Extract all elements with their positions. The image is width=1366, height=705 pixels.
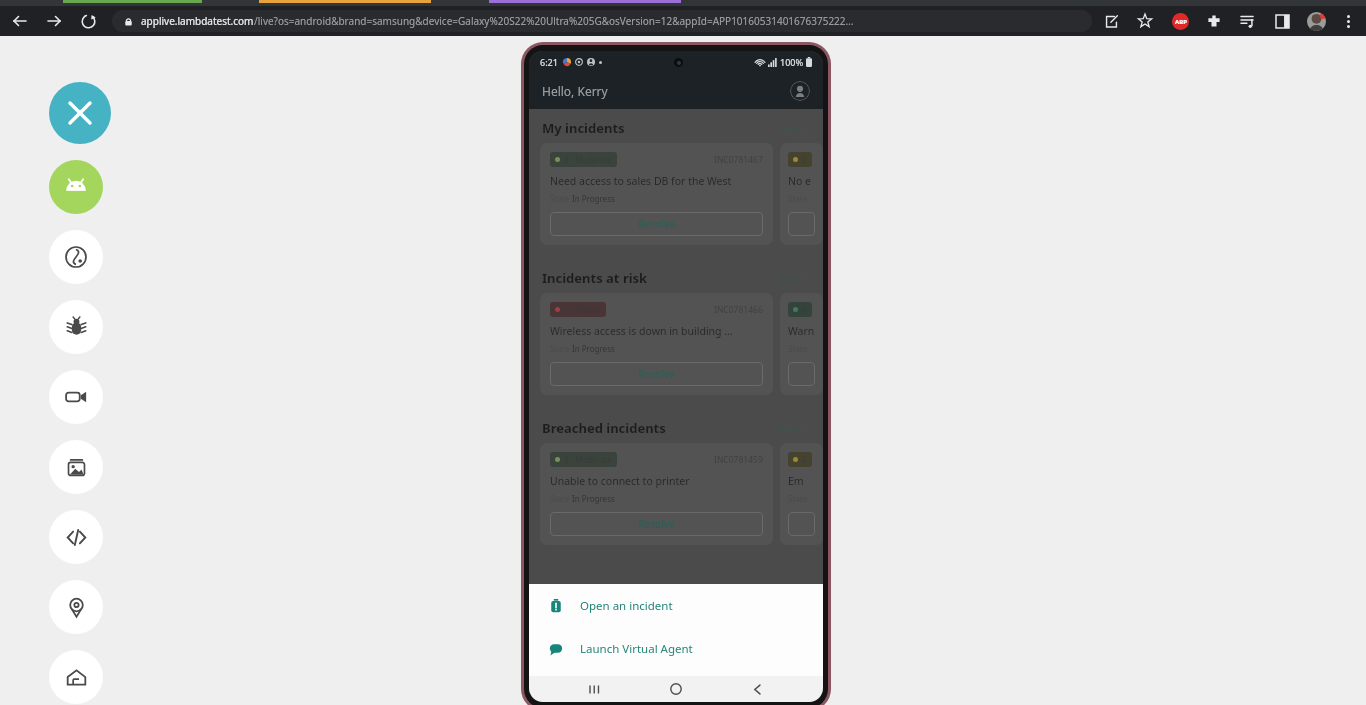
staticText: See all	[780, 272, 808, 284]
button[interactable]: Launch Virtual Agent	[529, 627, 823, 670]
staticText: In Progress	[572, 493, 615, 504]
staticText: Wireless access is down in building …	[550, 324, 733, 338]
button[interactable]: AdBlock Plus	[1172, 13, 1189, 30]
staticText: Breached incidents	[542, 419, 666, 437]
button[interactable]: Side panel	[1273, 12, 1291, 30]
staticText: ABP	[1175, 18, 1187, 26]
button[interactable]: See all	[778, 420, 810, 436]
staticText: INC0781459	[714, 454, 763, 466]
button[interactable]: Profile	[790, 81, 810, 101]
button[interactable]: Open an incident	[529, 584, 823, 627]
staticText: Need access to sales DB for the West	[550, 174, 732, 188]
button[interactable]: Back	[742, 676, 772, 702]
button[interactable]: Report bug	[49, 300, 103, 354]
staticText: In Progress	[572, 193, 615, 204]
button[interactable]: Bookmark	[1136, 12, 1154, 30]
staticText: No e	[788, 174, 811, 188]
staticText: My incidents	[542, 119, 625, 137]
staticText: Resolve	[638, 517, 675, 531]
staticText: Warn	[788, 324, 815, 338]
button[interactable]: 3 · Moderate	[540, 143, 773, 245]
button[interactable]: Extensions	[1205, 12, 1223, 30]
staticText: Launch Virtual Agent	[580, 641, 693, 657]
staticText: Unable to connect to printer	[550, 474, 690, 488]
button[interactable]: Profile	[1307, 12, 1326, 31]
button[interactable]: Close	[49, 82, 111, 144]
staticText: /live?os=android&brand=samsung&device=Ga…	[254, 14, 854, 28]
staticText: See all	[780, 422, 808, 434]
button[interactable]: Rotate device	[49, 230, 103, 284]
button[interactable]: Screenshot	[49, 440, 103, 494]
button[interactable]: 2	[780, 143, 823, 245]
button[interactable]: Recent apps	[580, 676, 610, 702]
button[interactable]: Resolve	[550, 212, 763, 236]
staticText: In Progress	[572, 343, 615, 354]
staticText: Incidents at risk	[542, 269, 648, 287]
button[interactable]: Back	[10, 11, 30, 31]
button[interactable]: Open actions	[763, 654, 809, 700]
button[interactable]: Reading list	[1239, 12, 1257, 30]
staticText: Resolve	[638, 367, 675, 381]
button[interactable]: Android device	[49, 160, 103, 214]
button[interactable]: applive.lambdatest.com	[112, 10, 1092, 32]
button[interactable]: Record video	[49, 370, 103, 424]
button[interactable]: Developer tools	[49, 510, 103, 564]
staticText: 100%	[780, 56, 804, 68]
button[interactable]: 2	[780, 443, 823, 545]
staticText: Hello, Kerry	[542, 83, 608, 99]
staticText: INC0781466	[714, 304, 763, 316]
button[interactable]: Share	[1102, 12, 1120, 30]
staticText: Open an incident	[580, 598, 673, 614]
staticText: 1 · Critical	[564, 304, 601, 315]
button[interactable]: Home	[49, 650, 103, 704]
button[interactable]: 3 · Moderate	[540, 443, 773, 545]
button[interactable]: Forward	[44, 11, 64, 31]
button[interactable]: Home	[661, 676, 691, 702]
button[interactable]: See all	[778, 120, 810, 136]
button[interactable]: See all	[778, 270, 810, 286]
button[interactable]: Set location	[49, 580, 103, 634]
staticText: Resolve	[638, 217, 675, 231]
staticText: INC0781467	[714, 154, 763, 166]
staticText: applive.lambdatest.com	[141, 14, 254, 28]
button[interactable]: Reload	[78, 11, 98, 31]
button[interactable]: Resolve	[550, 362, 763, 386]
staticText: See all	[780, 122, 808, 134]
button[interactable]: 4	[780, 293, 823, 395]
staticText: Em	[788, 474, 804, 488]
button[interactable]: 1 · Critical	[540, 293, 773, 395]
button[interactable]: More options	[1340, 13, 1356, 29]
staticText: 6:21	[540, 56, 558, 68]
button[interactable]: Resolve	[550, 512, 763, 536]
